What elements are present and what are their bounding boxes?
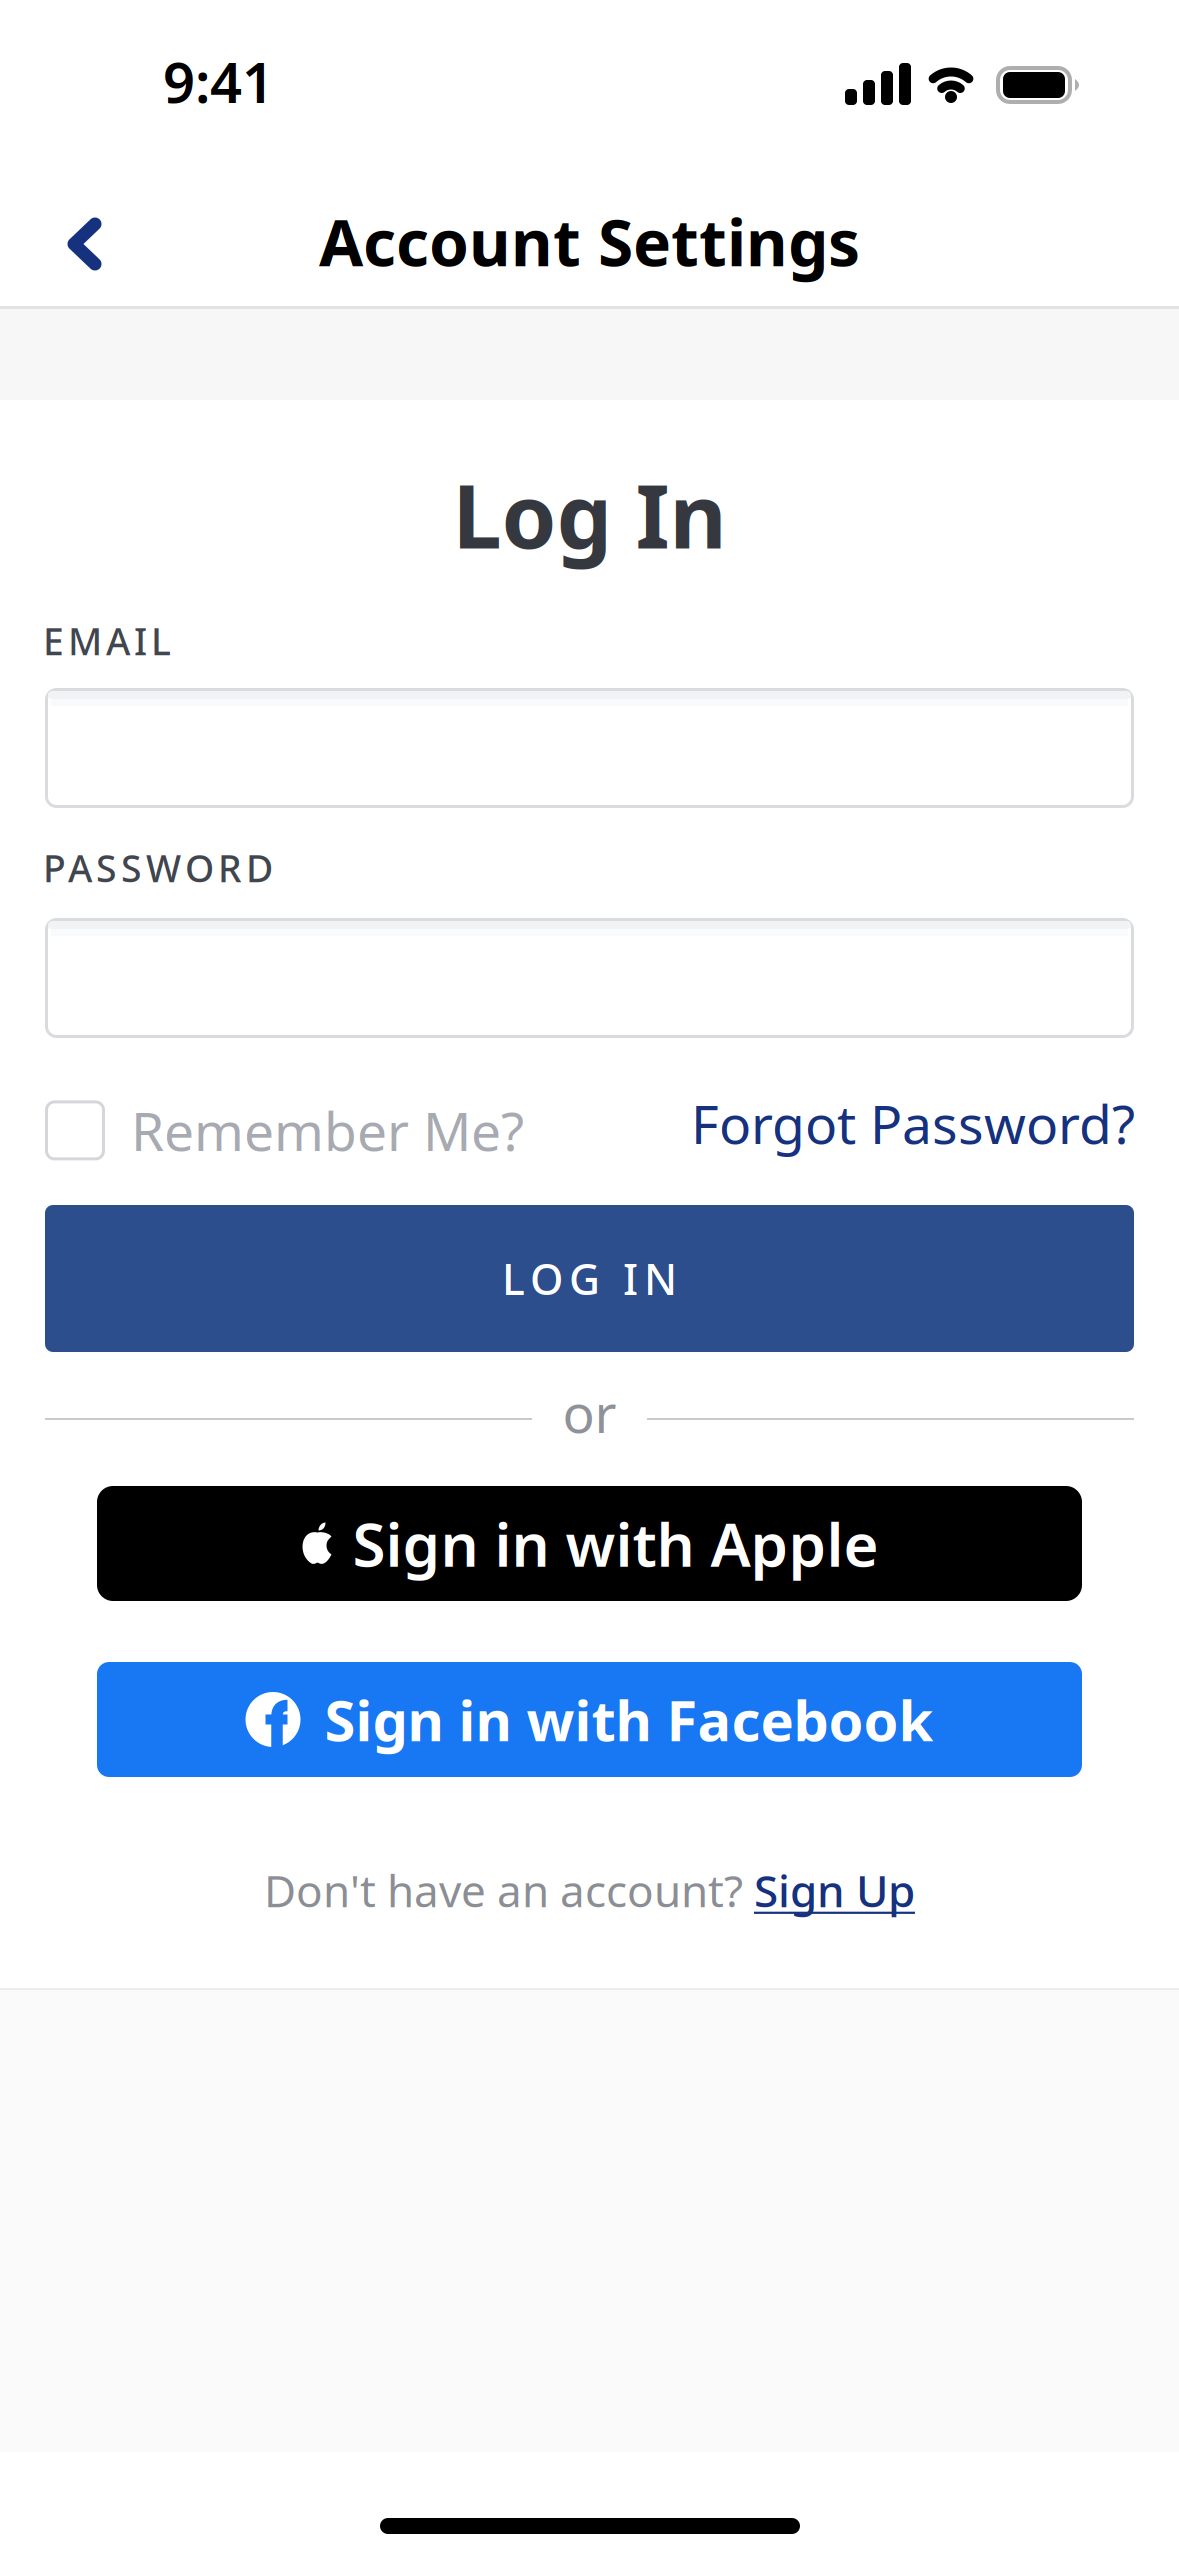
button[interactable] <box>45 918 1134 1038</box>
staticText: PASSWORD <box>43 843 273 893</box>
staticText: Forgot Password? <box>691 1088 1135 1159</box>
staticText: Remember Me? <box>131 1095 524 1166</box>
staticText: or <box>562 1377 616 1448</box>
staticText: Account Settings <box>319 199 860 284</box>
staticText: Log In <box>452 456 726 573</box>
button[interactable]: Sign in with Facebook <box>97 1662 1082 1777</box>
staticText: EMAIL <box>43 616 171 666</box>
button[interactable]: Sign in with Apple <box>97 1486 1082 1601</box>
button[interactable]: Sign Up <box>754 1861 915 1919</box>
button[interactable] <box>67 217 103 271</box>
button[interactable]: Forgot Password? <box>0 1088 1135 1159</box>
staticText: Don't have an account? <box>264 1861 754 1919</box>
staticText: Sign in with Facebook <box>324 1682 933 1757</box>
staticText: Sign in with Apple <box>352 1504 878 1583</box>
button[interactable]: Remember Me? <box>45 1095 524 1166</box>
staticText: LOG IN <box>502 1250 677 1307</box>
staticText: Sign Up <box>754 1861 915 1919</box>
staticText: 9:41 <box>163 44 274 118</box>
button[interactable] <box>45 688 1134 808</box>
button[interactable]: LOG IN <box>45 1205 1134 1352</box>
